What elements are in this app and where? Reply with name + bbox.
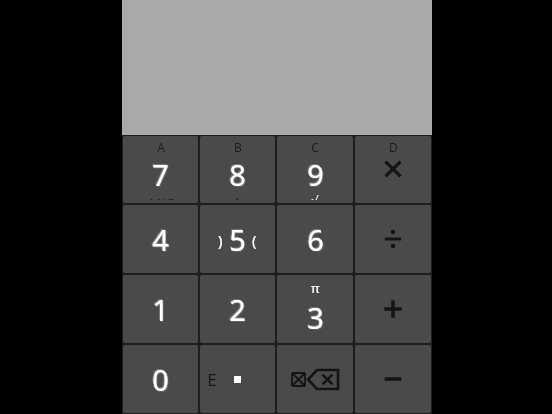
staticText: ANS (147, 194, 175, 200)
button[interactable]: 5 parentheses (200, 205, 275, 273)
staticText: 4 (153, 221, 170, 260)
button[interactable]: Clear and backspace (277, 345, 353, 413)
staticText: 2 (229, 290, 246, 329)
button[interactable]: 3 pi (277, 275, 353, 343)
staticText: ) (218, 230, 223, 250)
staticText: 7 (151, 154, 168, 193)
staticText: 0 (151, 359, 168, 398)
staticText: 7 (153, 156, 170, 195)
staticText: 8 (229, 155, 246, 194)
staticText: 0 (152, 360, 169, 399)
staticText: 5 (228, 219, 245, 258)
staticText: 3 (306, 297, 323, 336)
staticText: 6 (308, 221, 325, 260)
staticText: 9 (308, 156, 325, 195)
staticText: 1 (153, 291, 170, 330)
staticText: B (234, 139, 242, 155)
staticText: 2 (230, 291, 247, 330)
staticText: 9 (306, 154, 323, 193)
button[interactable]: 7 ANS (123, 136, 198, 203)
staticText: 5 (229, 220, 246, 259)
staticText: 9 (307, 155, 324, 194)
button[interactable]: E decimal point (200, 345, 275, 413)
staticText: 8 (230, 156, 247, 195)
staticText: ( (252, 230, 257, 250)
staticText: 2 (228, 289, 245, 328)
staticText: 4 (152, 220, 169, 259)
staticText: 6 (306, 219, 323, 258)
button[interactable]: 4 (123, 205, 198, 273)
staticText: D (389, 139, 398, 155)
staticText: 4 (151, 219, 168, 258)
staticText: 0 (153, 361, 170, 400)
staticText: 6 (307, 220, 324, 259)
staticText: ^ (234, 194, 241, 200)
staticText: √ (311, 194, 319, 200)
button[interactable]: Multiply (355, 136, 431, 203)
staticText: E (207, 368, 217, 391)
staticText: 8 (228, 154, 245, 193)
staticText: 1 (151, 289, 168, 328)
button[interactable]: 2 (200, 275, 275, 343)
staticText: 1 (152, 290, 169, 329)
staticText: 3 (308, 299, 325, 338)
staticText: A (157, 139, 165, 155)
button[interactable]: 0 (123, 345, 198, 413)
button[interactable]: 9 square root (277, 136, 353, 203)
button[interactable]: Plus (355, 275, 431, 343)
staticText: 5 (230, 221, 247, 260)
staticText: C (311, 139, 319, 155)
button[interactable]: 1 (123, 275, 198, 343)
button[interactable]: 8 power (200, 136, 275, 203)
button[interactable]: 6 (277, 205, 353, 273)
button[interactable]: Divide (355, 205, 431, 273)
button[interactable]: Minus (355, 345, 431, 413)
staticText: π (311, 279, 320, 297)
staticText: 3 (307, 298, 324, 337)
staticText: 7 (152, 155, 169, 194)
